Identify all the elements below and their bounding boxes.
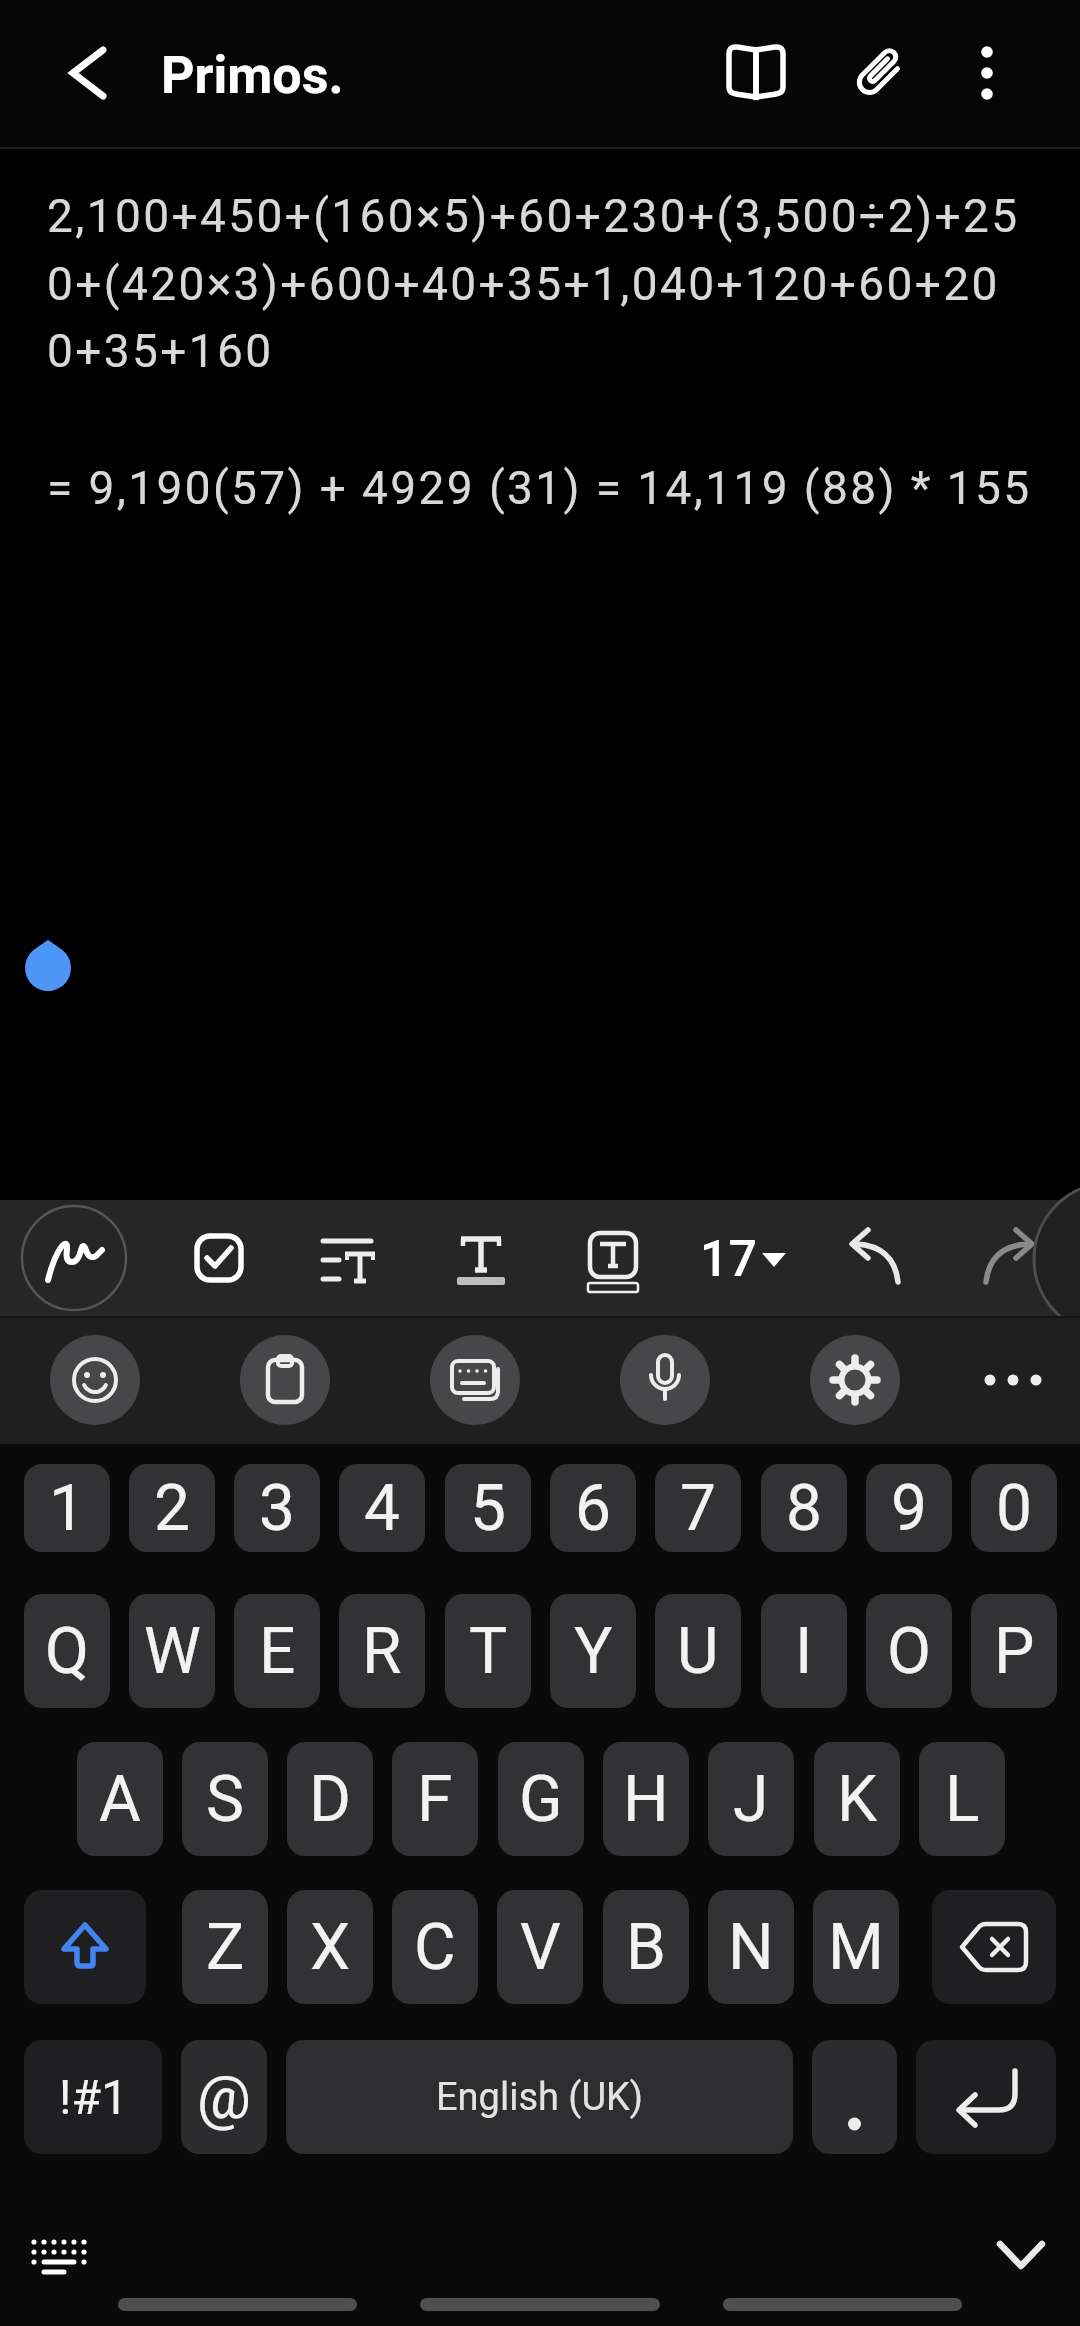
staticText: 7: [680, 1471, 716, 1546]
button[interactable]: [24, 25, 120, 121]
button[interactable]: A: [77, 1742, 163, 1856]
staticText: I: [795, 1614, 813, 1689]
button[interactable]: J: [708, 1742, 794, 1856]
button[interactable]: 1: [24, 1464, 110, 1552]
button[interactable]: [20, 1204, 128, 1312]
button[interactable]: [706, 21, 806, 121]
staticText: 2,100+450+(160×5)+60+230+(3,500÷2)+25: [47, 189, 1020, 243]
button[interactable]: Y: [550, 1594, 636, 1708]
staticText: 6: [575, 1471, 611, 1546]
button[interactable]: E: [234, 1594, 320, 1708]
button[interactable]: N: [708, 1890, 794, 2004]
button[interactable]: S: [182, 1742, 268, 1856]
button[interactable]: [812, 2040, 897, 2154]
button[interactable]: L: [919, 1742, 1005, 1856]
staticText: D: [309, 1762, 351, 1837]
button[interactable]: 5: [445, 1464, 531, 1552]
staticText: 3: [259, 1471, 295, 1546]
staticText: Z: [206, 1910, 245, 1985]
button[interactable]: 0: [971, 1464, 1057, 1552]
staticText: @: [197, 2062, 251, 2132]
staticText: 2: [154, 1471, 190, 1546]
staticText: E: [259, 1614, 296, 1689]
button[interactable]: [240, 1335, 330, 1425]
staticText: T: [469, 1614, 508, 1689]
staticText: 9: [891, 1471, 927, 1546]
button[interactable]: @: [181, 2040, 267, 2154]
button[interactable]: Z: [182, 1890, 268, 2004]
staticText: 5: [470, 1471, 506, 1546]
staticText: Primos.: [161, 45, 344, 106]
button[interactable]: P: [971, 1594, 1057, 1708]
staticText: P: [994, 1614, 1035, 1689]
staticText: G: [519, 1762, 563, 1837]
staticText: N: [728, 1910, 774, 1985]
button[interactable]: B: [603, 1890, 689, 2004]
button[interactable]: Q: [24, 1594, 110, 1708]
button[interactable]: [444, 1221, 518, 1295]
button[interactable]: [810, 1335, 900, 1425]
button[interactable]: H: [603, 1742, 689, 1856]
staticText: 8: [786, 1471, 822, 1546]
staticText: K: [837, 1762, 878, 1837]
button[interactable]: [990, 2226, 1054, 2286]
button[interactable]: [20, 2226, 100, 2290]
staticText: F: [417, 1762, 453, 1837]
button[interactable]: X: [287, 1890, 373, 2004]
staticText: V: [520, 1910, 561, 1985]
button[interactable]: English (UK): [286, 2040, 793, 2154]
button[interactable]: 8: [761, 1464, 847, 1552]
button[interactable]: [916, 2040, 1056, 2154]
button[interactable]: 3: [234, 1464, 320, 1552]
button[interactable]: [947, 22, 1027, 122]
button[interactable]: 17: [690, 1216, 800, 1300]
button[interactable]: [24, 1890, 146, 2004]
staticText: X: [310, 1910, 351, 1985]
staticText: U: [677, 1614, 719, 1689]
button[interactable]: 6: [550, 1464, 636, 1552]
button[interactable]: [932, 1890, 1056, 2004]
button[interactable]: R: [339, 1594, 425, 1708]
staticText: O: [887, 1614, 932, 1689]
staticText: L: [945, 1762, 980, 1837]
staticText: 0+35+160: [47, 324, 274, 378]
button[interactable]: [50, 1335, 140, 1425]
button[interactable]: 4: [339, 1464, 425, 1552]
staticText: S: [206, 1762, 244, 1837]
button[interactable]: O: [866, 1594, 952, 1708]
staticText: R: [362, 1614, 402, 1689]
staticText: 4: [364, 1471, 400, 1546]
button[interactable]: U: [655, 1594, 741, 1708]
staticText: 1: [49, 1471, 85, 1546]
button[interactable]: F: [392, 1742, 478, 1856]
button[interactable]: [576, 1221, 650, 1295]
button[interactable]: W: [129, 1594, 215, 1708]
staticText: Q: [45, 1614, 90, 1689]
button[interactable]: [310, 1221, 386, 1295]
button[interactable]: D: [287, 1742, 373, 1856]
button[interactable]: 9: [866, 1464, 952, 1552]
staticText: C: [414, 1910, 456, 1985]
button[interactable]: M: [813, 1890, 899, 2004]
button[interactable]: [830, 20, 930, 120]
staticText: !#1: [59, 2069, 128, 2125]
button[interactable]: !#1: [24, 2040, 162, 2154]
button[interactable]: I: [761, 1594, 847, 1708]
staticText: J: [733, 1762, 769, 1837]
staticText: B: [626, 1910, 666, 1985]
button[interactable]: [430, 1335, 520, 1425]
button[interactable]: 7: [655, 1464, 741, 1552]
button[interactable]: V: [497, 1890, 583, 2004]
staticText: A: [99, 1762, 141, 1837]
button[interactable]: [832, 1218, 916, 1298]
button[interactable]: 2: [129, 1464, 215, 1552]
button[interactable]: [182, 1221, 256, 1295]
button[interactable]: [970, 1340, 1060, 1420]
button[interactable]: G: [498, 1742, 584, 1856]
button[interactable]: [968, 1218, 1052, 1298]
button[interactable]: T: [445, 1594, 531, 1708]
staticText: W: [144, 1614, 201, 1689]
button[interactable]: K: [814, 1742, 900, 1856]
button[interactable]: [620, 1335, 710, 1425]
button[interactable]: C: [392, 1890, 478, 2004]
